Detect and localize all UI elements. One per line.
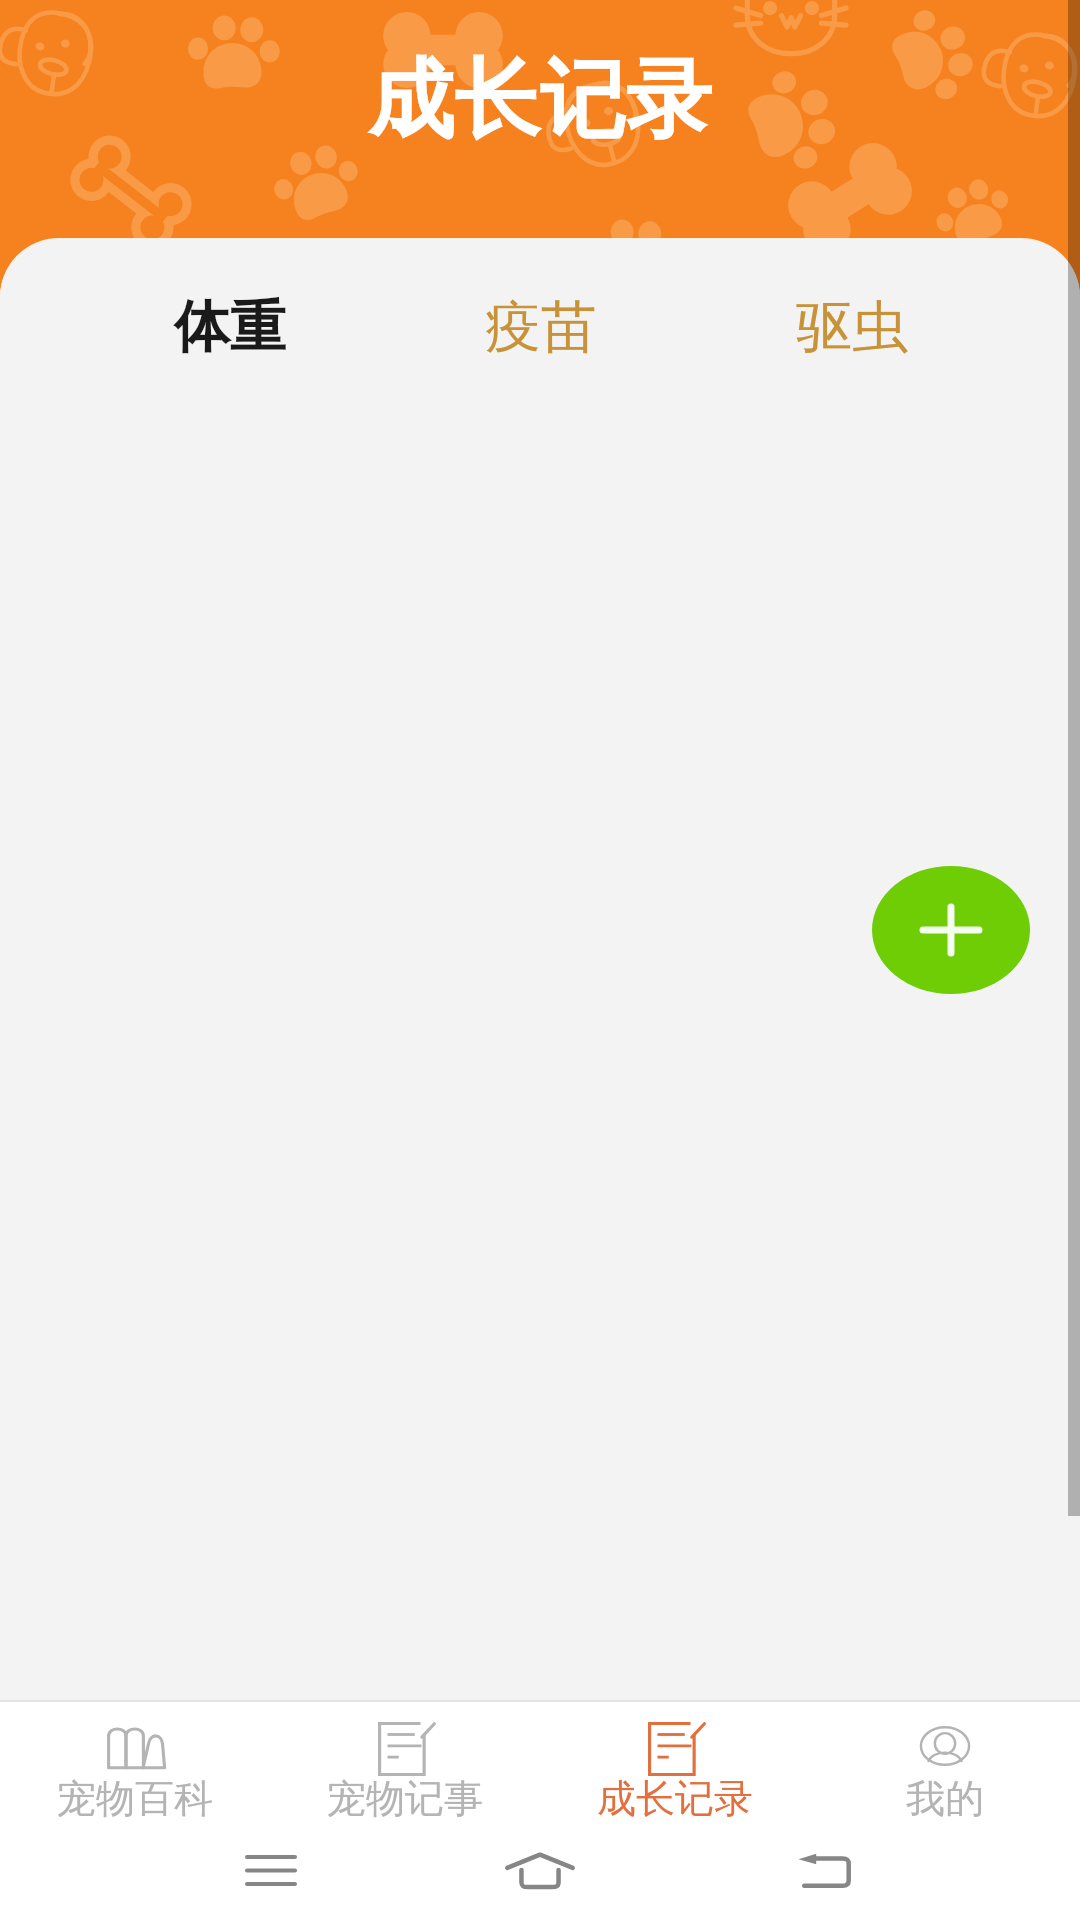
staticText: 体重 (174, 292, 286, 363)
button[interactable]: Back (764, 1831, 884, 1909)
button[interactable]: 宠物百科 (0, 1702, 270, 1830)
staticText: 宠物记事 (327, 1774, 483, 1823)
staticText: 成长记录 (597, 1774, 753, 1823)
button[interactable]: 驱虫 (696, 292, 1007, 363)
button[interactable]: Home (480, 1831, 600, 1909)
button[interactable]: Add record (872, 866, 1030, 994)
staticText: 驱虫 (796, 292, 908, 363)
staticText: 成长记录 (368, 46, 712, 154)
button[interactable]: 宠物记事 (270, 1702, 540, 1830)
staticText: 疫苗 (485, 292, 597, 363)
button[interactable]: 成长记录 (540, 1702, 810, 1830)
staticText: 我的 (906, 1774, 984, 1823)
button[interactable]: Recents (211, 1831, 331, 1909)
button[interactable]: 我的 (810, 1702, 1080, 1830)
button[interactable]: 疫苗 (385, 292, 696, 363)
button[interactable]: 体重 (75, 292, 385, 363)
staticText: 宠物百科 (57, 1774, 213, 1823)
